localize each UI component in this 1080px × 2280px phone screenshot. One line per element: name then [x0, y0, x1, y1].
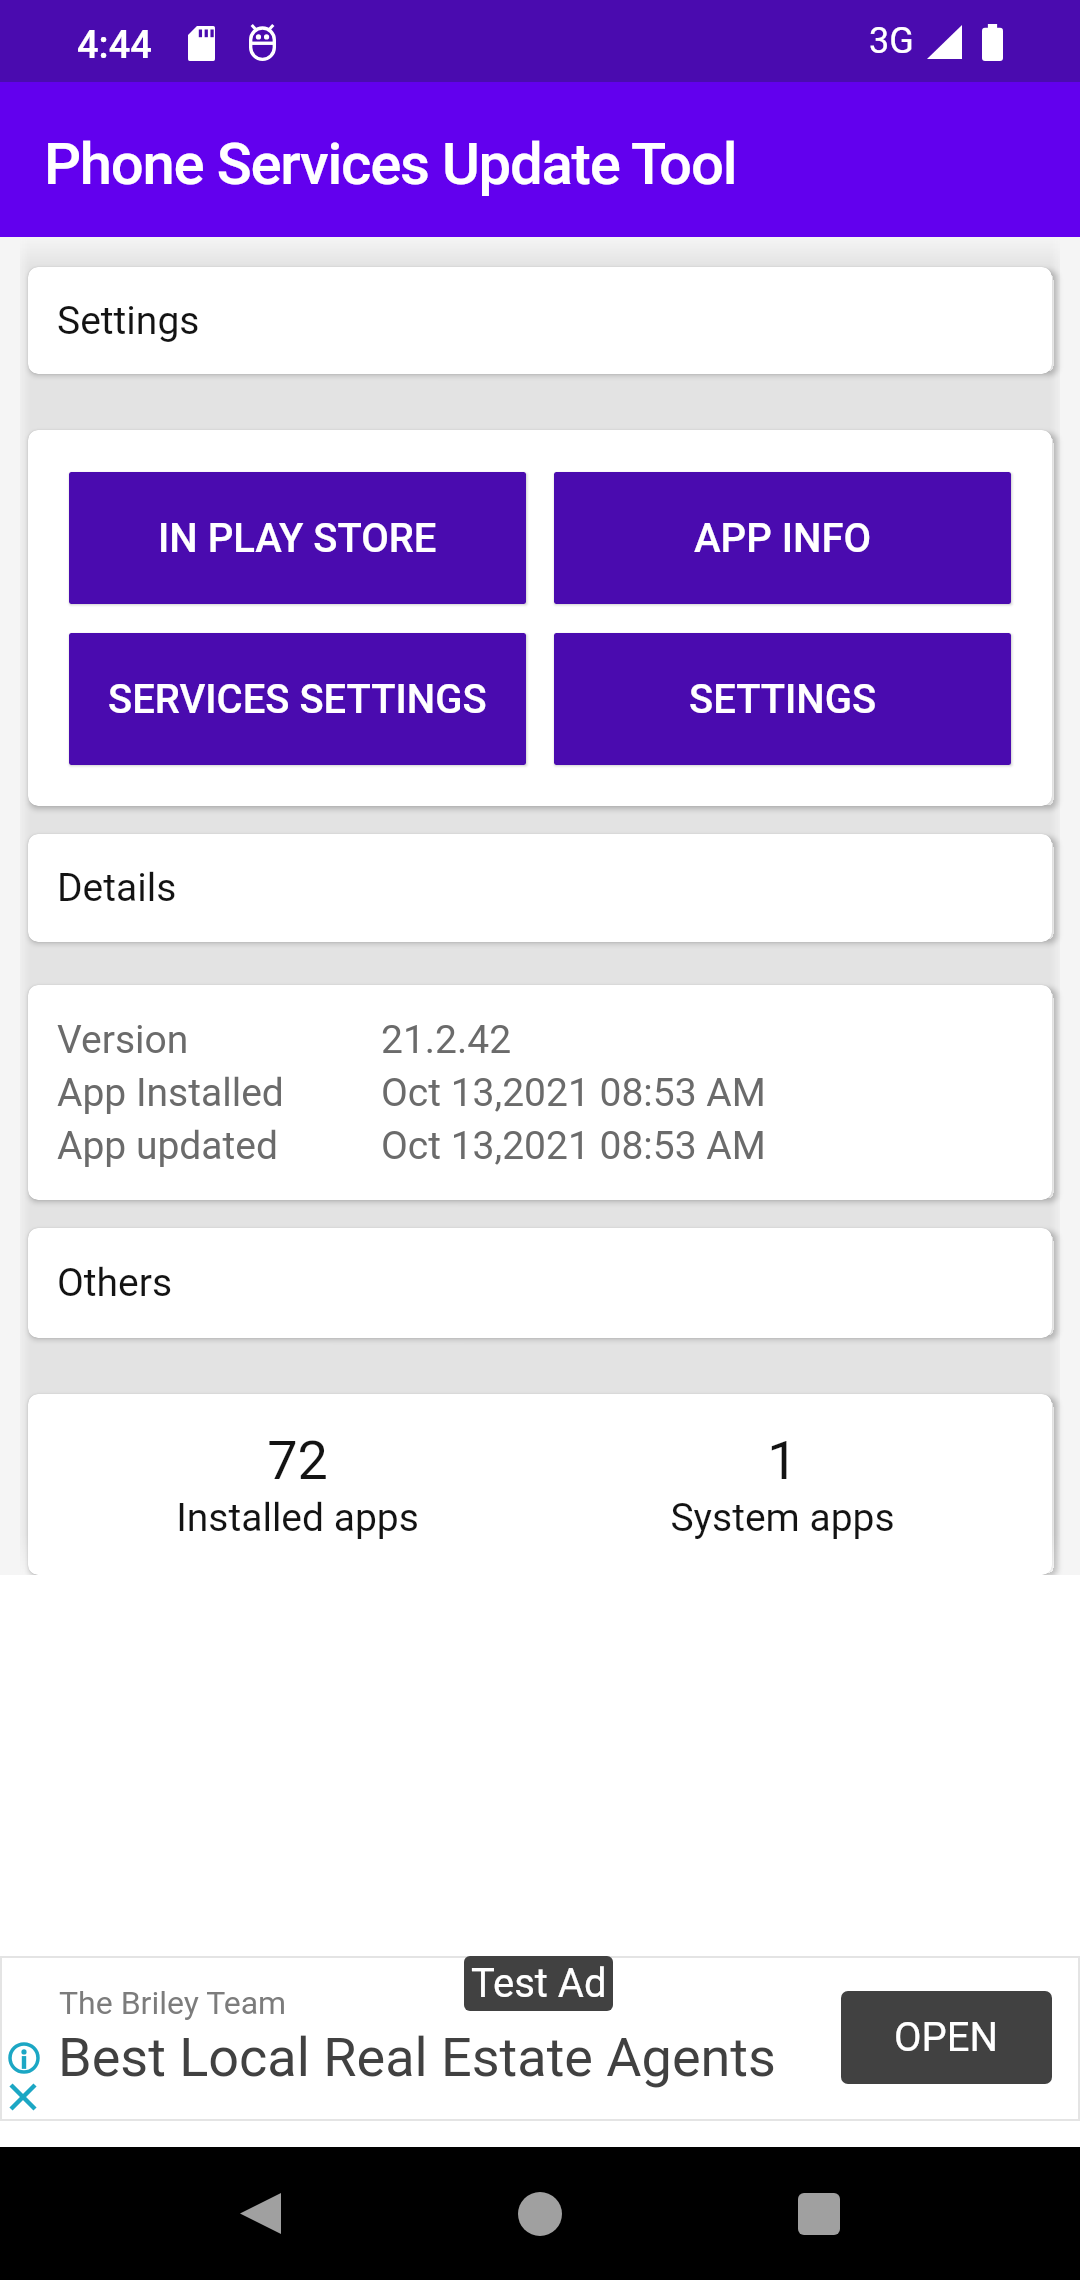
staticText: App Installed: [57, 1070, 381, 1116]
staticText: IN PLAY STORE: [158, 515, 437, 562]
button[interactable]: Close ad: [10, 2084, 36, 2110]
staticText: 3G: [869, 20, 914, 62]
staticText: Oct 13,2021 08:53 AM: [381, 1123, 766, 1169]
staticText: Phone Services Update Tool: [44, 130, 737, 198]
button[interactable]: Details: [28, 834, 1052, 942]
staticText: System apps: [670, 1495, 895, 1541]
staticText: Oct 13,2021 08:53 AM: [381, 1070, 766, 1116]
button[interactable]: Settings: [28, 267, 1052, 374]
button[interactable]: 72: [69, 1394, 526, 1575]
button[interactable]: 1: [554, 1394, 1011, 1575]
staticText: The Briley Team: [59, 1984, 287, 2022]
button[interactable]: Back: [240, 2191, 281, 2236]
staticText: Best Local Real Estate Agents: [58, 2026, 776, 2089]
staticText: SETTINGS: [689, 676, 877, 723]
staticText: 72: [267, 1429, 328, 1492]
staticText: Settings: [57, 298, 200, 344]
button[interactable]: SETTINGS: [554, 633, 1011, 765]
button[interactable]: Recent apps: [798, 2193, 840, 2235]
staticText: 4:44: [77, 23, 152, 68]
staticText: Version: [57, 1017, 381, 1063]
button[interactable]: Home: [518, 2192, 562, 2236]
staticText: OPEN: [894, 2014, 999, 2061]
staticText: Test Ad: [471, 1960, 607, 2007]
button[interactable]: APP INFO: [554, 472, 1011, 604]
staticText: APP INFO: [694, 515, 872, 562]
button[interactable]: Others: [28, 1228, 1052, 1338]
staticText: SERVICES SETTINGS: [108, 676, 487, 723]
staticText: Details: [57, 865, 177, 911]
staticText: 21.2.42: [381, 1017, 512, 1063]
staticText: 1: [767, 1429, 798, 1492]
button[interactable]: Ad choices: [8, 2042, 40, 2074]
button[interactable]: SERVICES SETTINGS: [69, 633, 526, 765]
button[interactable]: IN PLAY STORE: [69, 472, 526, 604]
button[interactable]: OPEN: [841, 1991, 1052, 2084]
staticText: Installed apps: [176, 1495, 419, 1541]
staticText: App updated: [57, 1123, 381, 1169]
staticText: Others: [57, 1260, 173, 1306]
